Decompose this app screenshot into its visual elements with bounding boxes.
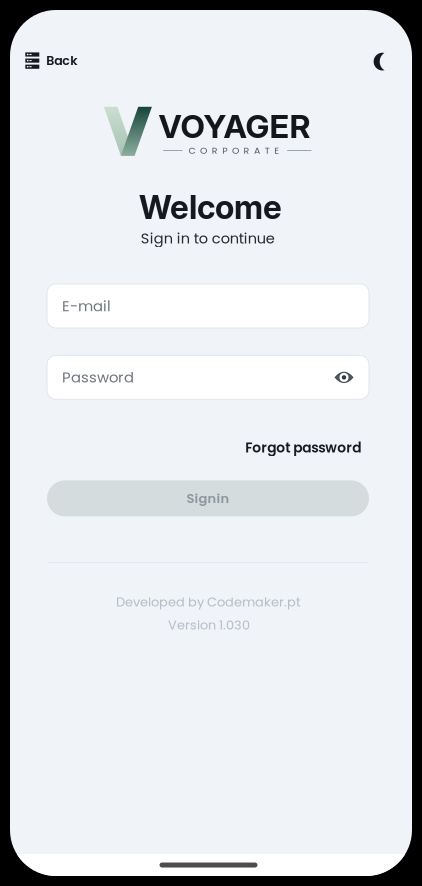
staticText: Welcome bbox=[139, 187, 282, 227]
staticText: Signin bbox=[186, 489, 229, 508]
staticText: Developed by Codemaker.pt bbox=[116, 593, 301, 611]
button[interactable]: Back bbox=[11, 39, 91, 82]
staticText: CORPORATE bbox=[188, 144, 279, 157]
staticText: E-mail bbox=[62, 296, 111, 316]
staticText: Back bbox=[46, 52, 77, 69]
button[interactable]: Dark mode bbox=[359, 40, 406, 83]
button[interactable]: Signin bbox=[47, 480, 369, 516]
button[interactable]: Show password bbox=[334, 370, 354, 384]
staticText: Forgot password bbox=[245, 438, 361, 457]
staticText: Sign in to continue bbox=[141, 228, 275, 248]
button[interactable]: Forgot password bbox=[237, 431, 369, 464]
staticText: Password bbox=[62, 367, 134, 388]
staticText: VOYAGER bbox=[158, 107, 310, 146]
staticText: Version 1.030 bbox=[168, 616, 250, 634]
